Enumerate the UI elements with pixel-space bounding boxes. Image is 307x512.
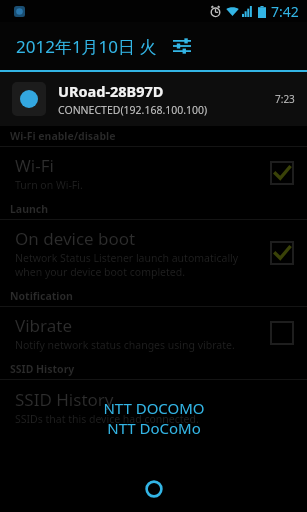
button[interactable]: On device boot [269, 240, 295, 266]
button[interactable]: SSID History [0, 380, 307, 434]
button[interactable]: Vibrate [0, 307, 307, 359]
staticText: Vibrate [15, 314, 72, 337]
button[interactable]: URoad-28B97D [0, 72, 307, 126]
staticText: Launch [10, 202, 49, 216]
staticText: URoad-28B97D [58, 81, 164, 101]
staticText: Network Status Listener launch automatic… [15, 251, 239, 279]
button[interactable]: Vibrate [269, 320, 295, 346]
staticText: NTT DoCoMo [107, 418, 201, 438]
staticText: On device boot [15, 227, 136, 250]
button[interactable]: Settings [169, 33, 195, 59]
staticText: Turn on Wi-Fi. [15, 178, 83, 192]
staticText: Notification [10, 289, 73, 303]
staticText: 2012年1月10日 火 [16, 35, 157, 58]
staticText: Wi-Fi enable/disable [10, 129, 116, 143]
button[interactable]: Wi-Fi [269, 160, 295, 186]
staticText: SSID History [15, 388, 114, 411]
button[interactable]: On device boot [0, 220, 307, 286]
staticText: SSIDs that this device had connected. [15, 412, 199, 426]
staticText: Wi-Fi [15, 154, 54, 177]
staticText: NTT DOCOMO [103, 398, 205, 418]
button[interactable]: Wi-Fi [0, 147, 307, 199]
staticText: CONNECTED(192.168.100.100) [58, 103, 208, 117]
staticText: 7:42 [271, 2, 299, 21]
staticText: SSID History [10, 362, 75, 376]
staticText: 7:23 [275, 92, 295, 106]
staticText: Notify network status changes using vibr… [15, 338, 235, 352]
